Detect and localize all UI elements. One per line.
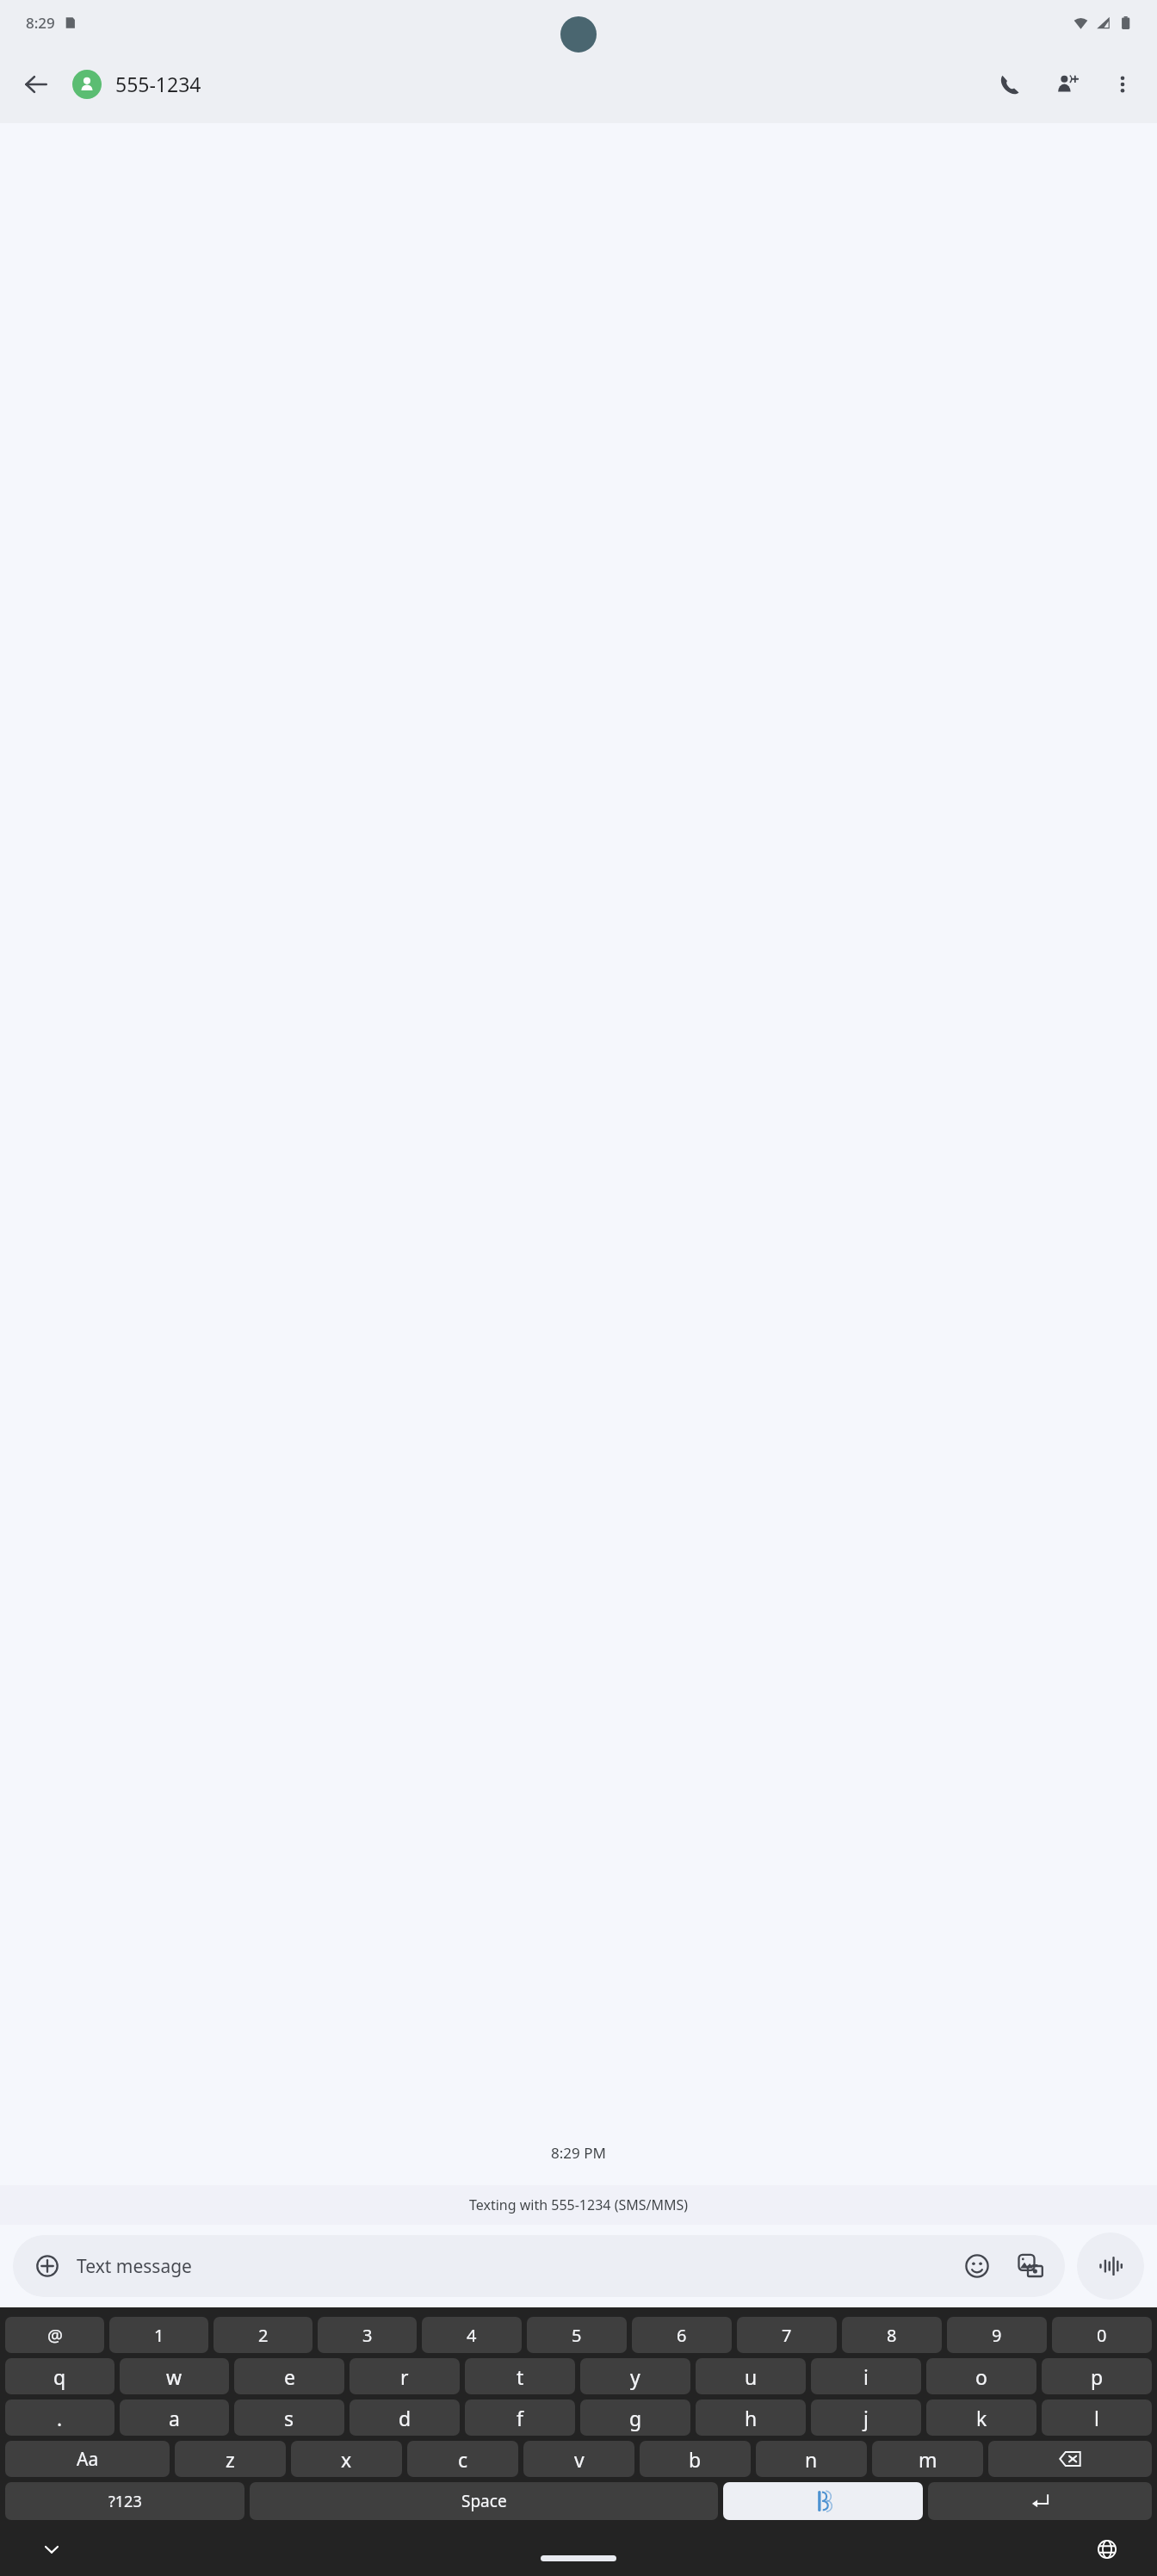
button[interactable]: y <box>580 2358 690 2394</box>
button[interactable]: c <box>407 2441 518 2477</box>
button[interactable]: ?123 <box>5 2482 244 2520</box>
button[interactable]: z <box>175 2441 286 2477</box>
staticText: p <box>1091 2363 1104 2390</box>
staticText: h <box>745 2405 758 2431</box>
staticText: l <box>1094 2405 1099 2431</box>
staticText: Aa <box>77 2447 99 2472</box>
staticText: 1 <box>154 2324 164 2347</box>
staticText: s <box>284 2405 294 2431</box>
button[interactable]: . <box>5 2400 114 2436</box>
staticText: e <box>284 2363 295 2390</box>
button[interactable]: Backspace <box>988 2441 1152 2477</box>
staticText: k <box>976 2405 987 2431</box>
button[interactable]: p <box>1042 2358 1152 2394</box>
button[interactable]: @ <box>5 2317 104 2353</box>
button[interactable]: f <box>465 2400 575 2436</box>
button[interactable]: u <box>696 2358 806 2394</box>
button[interactable]: Back <box>12 60 60 108</box>
staticText: g <box>629 2405 642 2431</box>
button[interactable]: j <box>811 2400 921 2436</box>
button[interactable]: 6 <box>632 2317 732 2353</box>
button[interactable]: Gallery and camera <box>1008 2244 1053 2288</box>
button[interactable]: l <box>1042 2400 1152 2436</box>
staticText: c <box>458 2446 468 2473</box>
staticText: n <box>805 2446 818 2473</box>
staticText: v <box>574 2446 585 2473</box>
staticText: y <box>630 2363 640 2390</box>
staticText: b <box>689 2446 702 2473</box>
staticText: Text message <box>77 2254 955 2279</box>
button[interactable]: k <box>926 2400 1036 2436</box>
button[interactable]: m <box>872 2441 983 2477</box>
button[interactable]: 3 <box>318 2317 417 2353</box>
button[interactable]: s <box>234 2400 344 2436</box>
button[interactable]: 555-1234 <box>115 45 987 123</box>
staticText: d <box>399 2405 411 2431</box>
button[interactable]: t <box>465 2358 575 2394</box>
staticText: a <box>169 2405 180 2431</box>
staticText: z <box>226 2446 235 2473</box>
staticText: 5 <box>572 2324 582 2347</box>
staticText: 8:29 PM <box>551 2143 606 2163</box>
staticText: ?123 <box>108 2491 142 2512</box>
button[interactable]: Voice message <box>1077 2232 1144 2300</box>
button[interactable]: x <box>291 2441 402 2477</box>
button[interactable]: 7 <box>737 2317 837 2353</box>
button[interactable]: Hide keyboard <box>33 2530 71 2568</box>
staticText: u <box>745 2363 758 2390</box>
staticText: q <box>53 2363 66 2390</box>
button[interactable]: More options <box>1100 62 1145 107</box>
button[interactable]: h <box>696 2400 806 2436</box>
button[interactable]: Enter <box>928 2482 1152 2520</box>
staticText: 555-1234 <box>115 71 201 97</box>
button[interactable]: o <box>926 2358 1036 2394</box>
button[interactable]: Contact avatar <box>72 70 102 99</box>
button[interactable]: Change keyboard language <box>1088 2530 1126 2568</box>
staticText: t <box>517 2363 524 2390</box>
staticText: Texting with 555-1234 (SMS/MMS) <box>469 2195 689 2214</box>
staticText: 7 <box>782 2324 792 2347</box>
staticText: 6 <box>677 2324 687 2347</box>
button[interactable]: e <box>234 2358 344 2394</box>
staticText: i <box>863 2363 869 2390</box>
button[interactable]: 0 <box>1052 2317 1152 2353</box>
staticText: o <box>975 2363 987 2390</box>
button[interactable]: 8 <box>842 2317 942 2353</box>
button[interactable]: Emoji <box>955 2244 999 2288</box>
staticText: j <box>863 2405 869 2431</box>
staticText: . <box>57 2405 63 2431</box>
button[interactable]: Aa <box>5 2441 170 2477</box>
staticText: m <box>919 2446 937 2473</box>
staticText: 8:29 <box>26 13 55 33</box>
staticText: @ <box>47 2324 63 2347</box>
button[interactable]: 2 <box>213 2317 312 2353</box>
button[interactable]: g <box>580 2400 690 2436</box>
staticText: w <box>166 2363 183 2390</box>
staticText: 8 <box>887 2324 897 2347</box>
button[interactable]: Space <box>250 2482 718 2520</box>
staticText: 0 <box>1097 2324 1107 2347</box>
button[interactable]: Call <box>987 62 1031 107</box>
button[interactable]: i <box>811 2358 921 2394</box>
button[interactable]: 1 <box>109 2317 208 2353</box>
button[interactable]: Add contact <box>1045 62 1090 107</box>
button[interactable]: d <box>350 2400 460 2436</box>
button[interactable]: Attach <box>13 2235 1065 2297</box>
button[interactable]: a <box>120 2400 229 2436</box>
staticText: 2 <box>258 2324 269 2347</box>
staticText: f <box>517 2405 523 2431</box>
button[interactable]: 4 <box>422 2317 522 2353</box>
button[interactable]: w <box>120 2358 229 2394</box>
button[interactable]: b <box>640 2441 751 2477</box>
button[interactable]: q <box>5 2358 114 2394</box>
button[interactable]: 5 <box>527 2317 627 2353</box>
button[interactable]: v <box>523 2441 634 2477</box>
staticText: 3 <box>362 2324 373 2347</box>
button[interactable]: 9 <box>947 2317 1047 2353</box>
button[interactable]: Voice typing <box>723 2482 923 2520</box>
staticText: Space <box>461 2490 507 2512</box>
button[interactable]: r <box>350 2358 460 2394</box>
button[interactable]: n <box>756 2441 867 2477</box>
button[interactable]: Attach <box>28 2247 66 2285</box>
staticText: r <box>400 2363 409 2390</box>
